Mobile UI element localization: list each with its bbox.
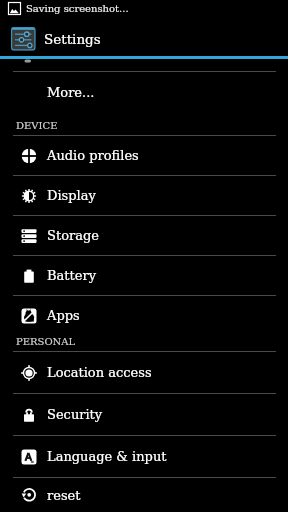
staticText: More... xyxy=(47,85,95,100)
staticText: Location access xyxy=(47,365,152,380)
button[interactable]: Battery xyxy=(0,256,288,295)
staticText: DEVICE xyxy=(16,120,58,132)
staticText: Audio profiles xyxy=(47,148,139,163)
button[interactable]: Storage xyxy=(0,216,288,255)
staticText: reset xyxy=(47,488,81,503)
button[interactable]: Apps xyxy=(0,296,288,335)
staticText: Display xyxy=(47,188,96,203)
button[interactable]: Audio profiles xyxy=(0,136,288,175)
staticText: Saving screenshot... xyxy=(26,3,129,15)
button[interactable]: reset xyxy=(0,478,288,512)
staticText: Apps xyxy=(47,308,80,323)
button[interactable]: Location access xyxy=(0,352,288,393)
button[interactable]: Display xyxy=(0,176,288,215)
button[interactable]: More... xyxy=(0,72,288,112)
staticText: Security xyxy=(47,407,103,422)
staticText: Language & input xyxy=(47,449,167,464)
button[interactable]: Security xyxy=(0,394,288,435)
staticText: Storage xyxy=(47,228,99,243)
button[interactable]: Language & input xyxy=(0,436,288,477)
staticText: PERSONAL xyxy=(16,336,76,348)
staticText: Battery xyxy=(47,268,97,283)
staticText: Settings xyxy=(44,31,101,47)
